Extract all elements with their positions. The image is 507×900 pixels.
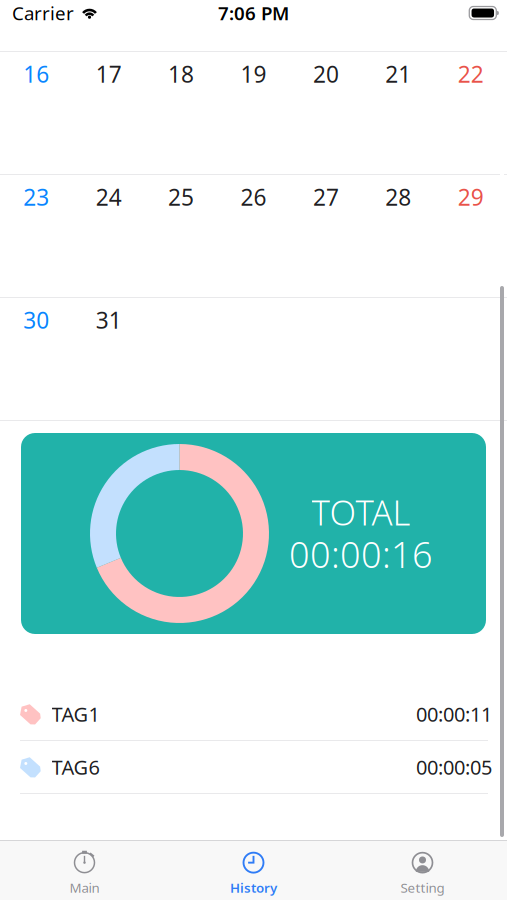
button[interactable]: 27: [290, 175, 362, 297]
staticText: TOTAL: [311, 489, 410, 535]
staticText: 28: [385, 182, 411, 212]
button[interactable]: TAG1: [0, 688, 507, 741]
staticText: History: [230, 879, 277, 896]
staticText: 31: [96, 305, 122, 335]
button[interactable]: 25: [145, 175, 217, 297]
staticText: 30: [23, 305, 49, 335]
staticText: 29: [458, 182, 484, 212]
button[interactable]: Main: [0, 841, 169, 900]
staticText: 21: [385, 59, 411, 89]
button[interactable]: 17: [72, 52, 145, 174]
staticText: 23: [23, 182, 49, 212]
staticText: 00:00:05: [416, 754, 492, 780]
button[interactable]: [435, 298, 507, 420]
button[interactable]: 18: [145, 52, 217, 174]
staticText: 18: [168, 59, 194, 89]
staticText: 00:00:16: [289, 530, 433, 578]
staticText: TAG1: [51, 701, 99, 727]
button[interactable]: 20: [290, 52, 362, 174]
staticText: 26: [240, 182, 266, 212]
button[interactable]: 19: [217, 52, 290, 174]
staticText: TAG6: [51, 754, 99, 780]
staticText: Setting: [400, 879, 444, 896]
staticText: 27: [313, 182, 339, 212]
button[interactable]: 24: [72, 175, 145, 297]
staticText: 17: [96, 59, 122, 89]
button[interactable]: TAG6: [0, 741, 507, 794]
button[interactable]: 28: [362, 175, 434, 297]
staticText: 25: [168, 182, 194, 212]
button[interactable]: Setting: [338, 841, 507, 900]
button[interactable]: 29: [435, 175, 507, 297]
staticText: Main: [69, 879, 99, 896]
staticText: 7:06 PM: [218, 1, 289, 25]
button[interactable]: 21: [362, 52, 434, 174]
staticText: 16: [23, 59, 49, 89]
button[interactable]: 22: [435, 52, 507, 174]
staticText: 20: [313, 59, 339, 89]
button[interactable]: 31: [72, 298, 145, 420]
staticText: 00:00:11: [416, 701, 492, 727]
button[interactable]: 26: [217, 175, 290, 297]
button[interactable]: 30: [0, 298, 72, 420]
button[interactable]: 23: [0, 175, 72, 297]
staticText: 19: [240, 59, 266, 89]
staticText: 22: [458, 59, 484, 89]
button[interactable]: 16: [0, 52, 72, 174]
staticText: Carrier: [12, 1, 74, 25]
staticText: 24: [96, 182, 122, 212]
button[interactable]: History: [169, 841, 338, 900]
